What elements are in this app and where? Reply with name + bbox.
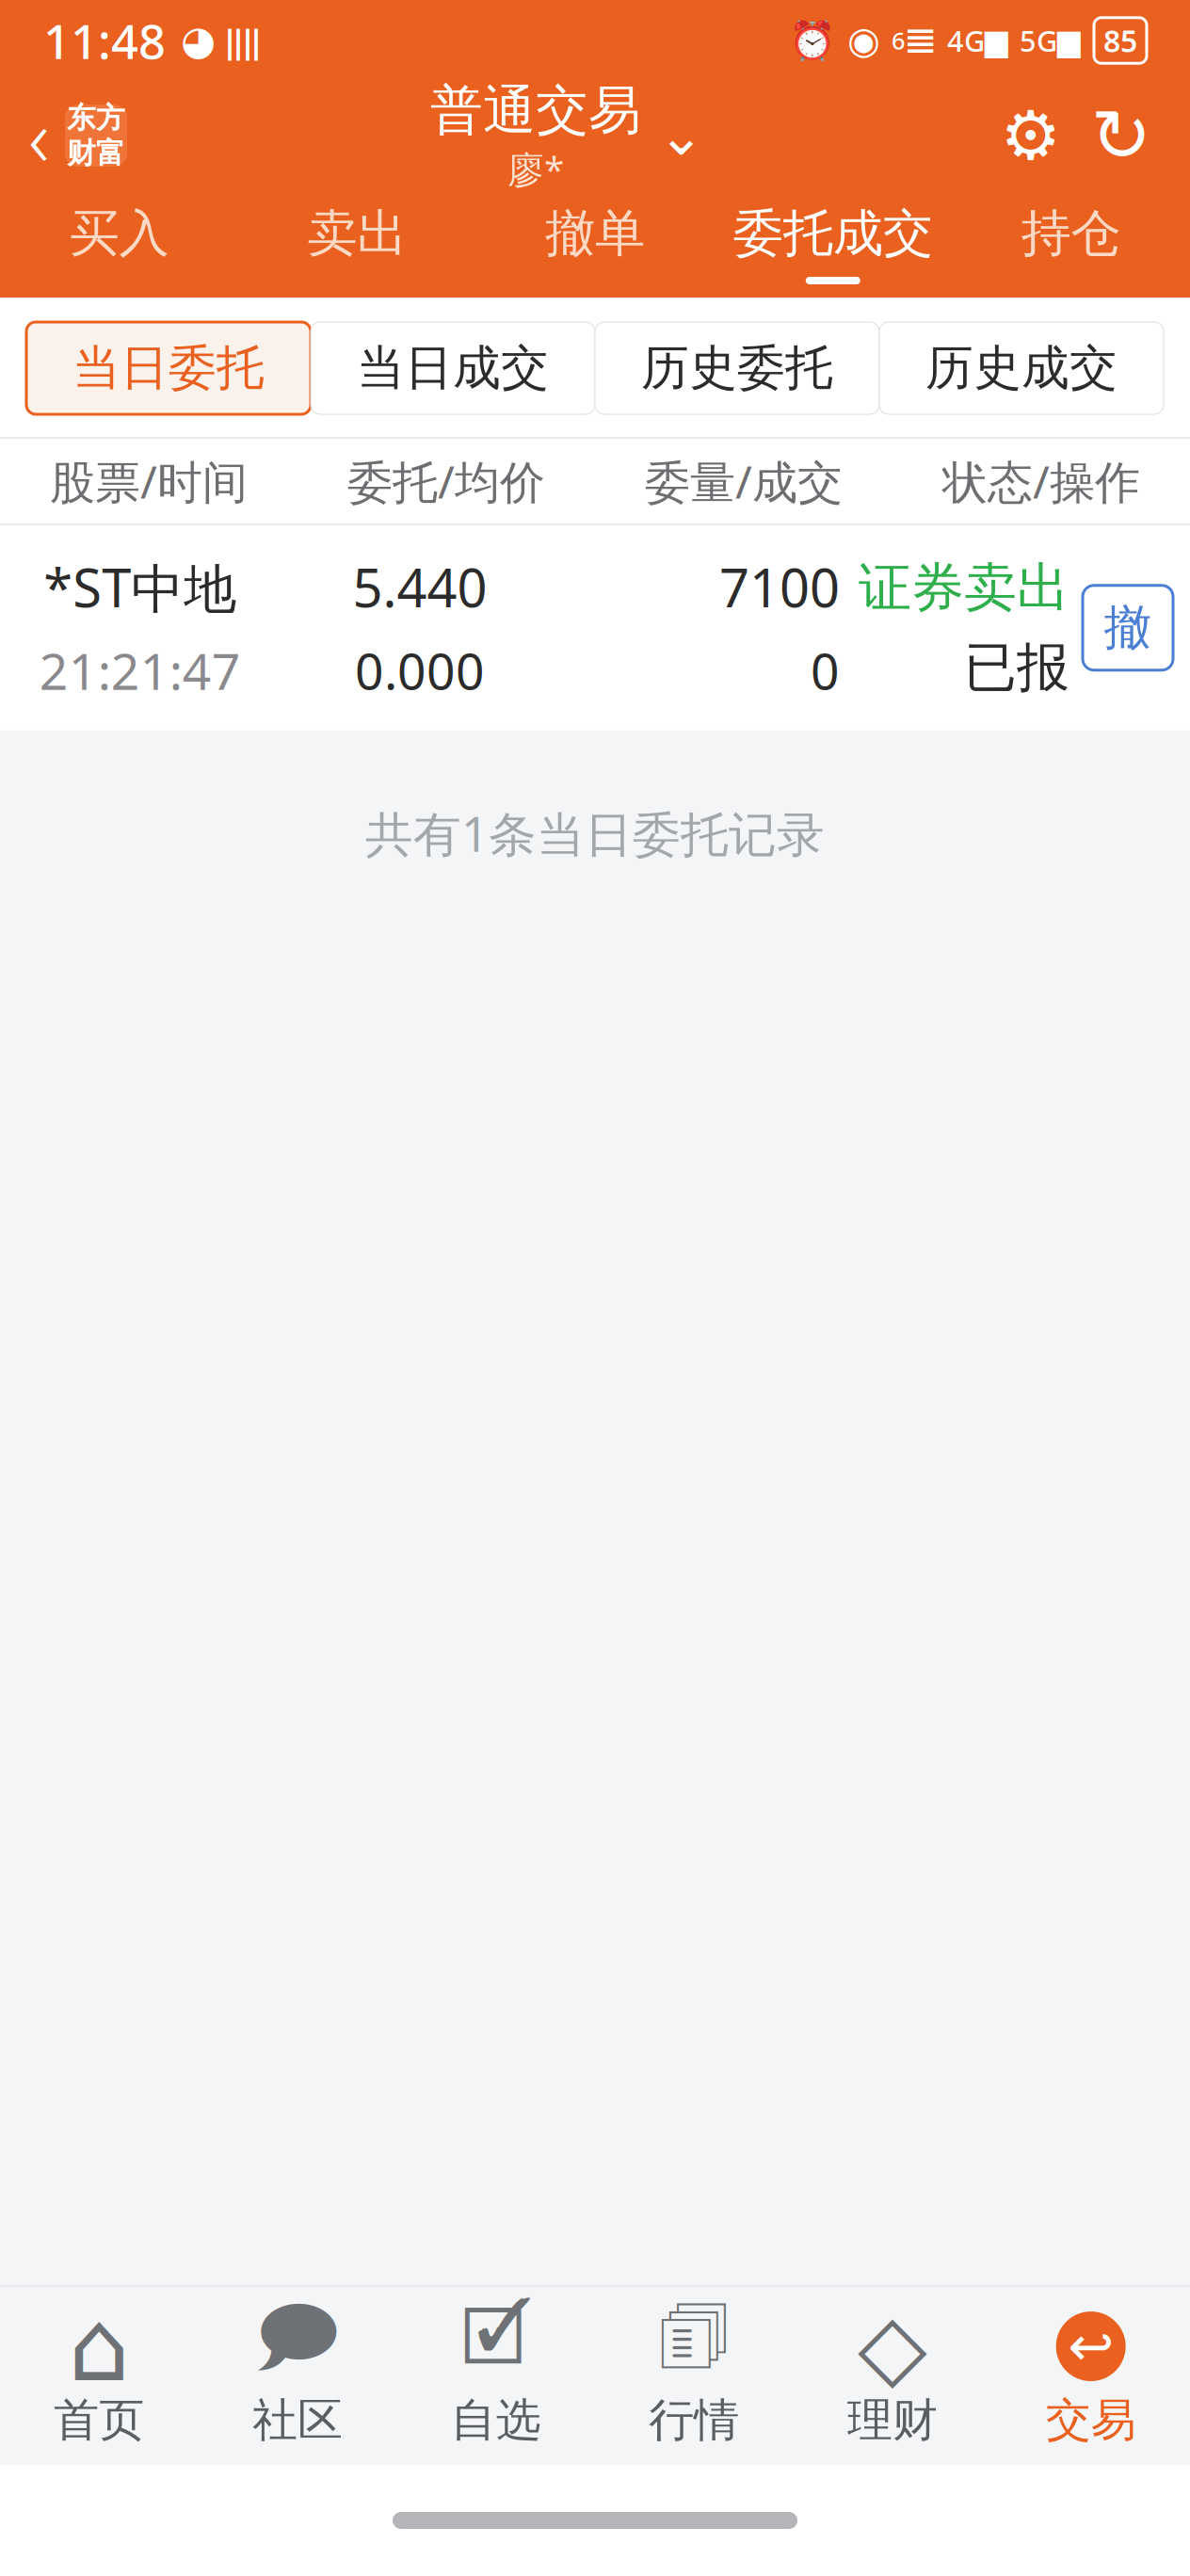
staticText: 理财 bbox=[847, 2392, 938, 2448]
staticText: 状态/操作 bbox=[942, 451, 1140, 511]
staticText: ⏰ bbox=[789, 19, 836, 62]
staticText: 普通交易 bbox=[430, 78, 641, 143]
button[interactable]: 撤单 bbox=[476, 190, 714, 298]
staticText: ◕ bbox=[181, 18, 216, 63]
staticText: ↩ bbox=[1068, 2315, 1114, 2378]
staticText: 委量/成交 bbox=[645, 451, 843, 511]
button[interactable]: 普通交易 bbox=[430, 81, 704, 190]
button[interactable]: 持仓 bbox=[952, 190, 1190, 298]
button[interactable]: 🗩 bbox=[198, 2310, 397, 2448]
staticText: 委托成交 bbox=[733, 203, 933, 264]
staticText: 东方 bbox=[67, 100, 125, 136]
staticText: 5.440 bbox=[353, 552, 487, 622]
staticText: 买入 bbox=[69, 203, 169, 264]
button[interactable]: 刷新 bbox=[1086, 101, 1156, 170]
button[interactable]: 设置 bbox=[996, 101, 1066, 170]
staticText: 行情 bbox=[649, 2392, 739, 2448]
staticText: ⚙ bbox=[1000, 97, 1061, 174]
staticText: 𝌆 bbox=[905, 21, 936, 60]
button[interactable]: 当日委托 bbox=[26, 322, 311, 414]
button[interactable]: 买入 bbox=[0, 190, 238, 298]
staticText: 社区 bbox=[252, 2392, 343, 2448]
button[interactable]: *ST中地 bbox=[0, 525, 1190, 730]
button[interactable]: ◇ bbox=[793, 2310, 992, 2448]
staticText: 已报 bbox=[964, 635, 1069, 700]
staticText: 委托/均价 bbox=[347, 451, 545, 511]
button[interactable]: ↩ bbox=[992, 2310, 1190, 2448]
staticText: ⌂ bbox=[68, 2291, 130, 2402]
staticText: ↻ bbox=[1091, 94, 1152, 177]
button[interactable]: 🗹 bbox=[397, 2310, 595, 2448]
staticText: 5G bbox=[1020, 21, 1057, 60]
button[interactable]: 撤 bbox=[1083, 585, 1173, 670]
staticText: 证券卖出 bbox=[859, 555, 1069, 620]
staticText: ▆ bbox=[985, 23, 1008, 58]
button[interactable]: ⌂ bbox=[0, 2310, 198, 2448]
button[interactable]: 委托成交 bbox=[714, 190, 952, 298]
staticText: 撤 bbox=[1104, 598, 1152, 657]
staticText: 历史成交 bbox=[925, 339, 1118, 397]
staticText: 6 bbox=[892, 25, 905, 56]
staticText: 股票/时间 bbox=[50, 451, 248, 511]
staticText: 卖出 bbox=[307, 203, 407, 264]
staticText: *ST中地 bbox=[43, 552, 236, 622]
button[interactable]: 当日成交 bbox=[311, 322, 595, 414]
staticText: 历史委托 bbox=[641, 339, 833, 397]
staticText: 0.000 bbox=[355, 637, 485, 704]
staticText: 当日委托 bbox=[72, 339, 265, 397]
staticText: 撤单 bbox=[545, 203, 645, 264]
staticText: 当日成交 bbox=[357, 339, 549, 397]
button[interactable]: 历史成交 bbox=[879, 322, 1164, 414]
staticText: 7100 bbox=[719, 552, 840, 622]
button[interactable]: 历史委托 bbox=[595, 322, 879, 414]
staticText: 自选 bbox=[451, 2392, 541, 2448]
staticText: 持仓 bbox=[1021, 203, 1121, 264]
staticText: ‹ bbox=[28, 82, 50, 189]
staticText: ◉ bbox=[847, 19, 880, 62]
staticText: 11:48 bbox=[43, 9, 166, 72]
staticText: ▆ bbox=[1057, 23, 1081, 58]
staticText: 共有1条当日委托记录 bbox=[365, 802, 825, 865]
staticText: 首页 bbox=[54, 2392, 144, 2448]
staticText: 交易 bbox=[1046, 2392, 1136, 2448]
staticText: 🗊 bbox=[658, 2282, 730, 2411]
staticText: 21:21:47 bbox=[39, 637, 241, 704]
staticText: 0 bbox=[811, 637, 840, 704]
button[interactable]: 卖出 bbox=[238, 190, 476, 298]
staticText: 85 bbox=[1103, 21, 1137, 61]
button[interactable]: 🗊 bbox=[595, 2310, 793, 2448]
button[interactable]: 返回 bbox=[0, 81, 138, 190]
staticText: 财富 bbox=[67, 136, 125, 171]
staticText: ⌄ bbox=[658, 104, 704, 167]
staticText: 🗩 bbox=[254, 2282, 341, 2411]
staticText: 🗹 bbox=[461, 2282, 531, 2411]
staticText: ◇ bbox=[858, 2295, 927, 2398]
staticText: 廖* bbox=[507, 145, 564, 193]
staticText: 4G bbox=[947, 21, 985, 60]
staticText: ‖‖ bbox=[225, 19, 261, 62]
